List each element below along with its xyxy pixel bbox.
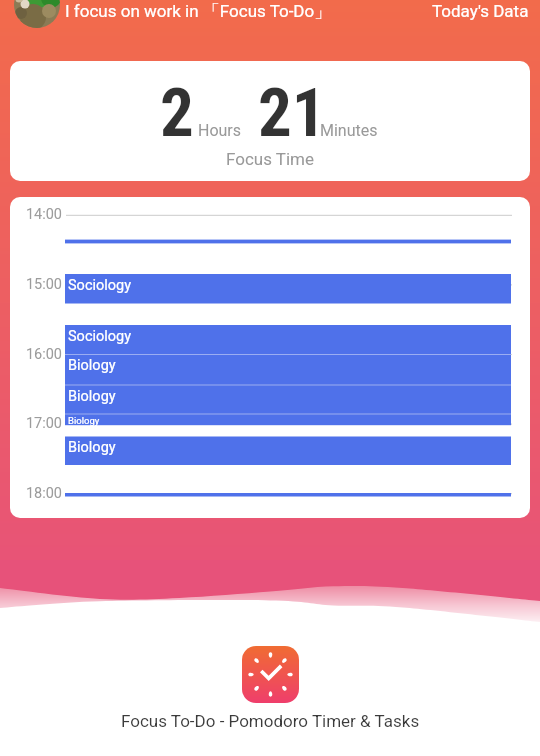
staticText: 18:00 bbox=[25, 485, 62, 502]
button[interactable]: 2 bbox=[10, 61, 530, 181]
staticText: Today's Data bbox=[432, 1, 529, 21]
staticText: Focus To-Do - Pomodoro Timer & Tasks bbox=[121, 711, 420, 731]
staticText: Sociology bbox=[68, 277, 132, 294]
button[interactable]: Profile bbox=[14, 0, 60, 28]
staticText: 2 bbox=[160, 74, 194, 153]
staticText: 21 bbox=[258, 74, 326, 153]
staticText: Sociology bbox=[68, 328, 132, 345]
staticText: I focus on work in 「Focus To-Do」 bbox=[65, 1, 332, 22]
staticText: 14:00 bbox=[25, 206, 62, 223]
staticText: Biology bbox=[68, 439, 116, 456]
staticText: Minutes bbox=[320, 121, 378, 140]
staticText: 15:00 bbox=[25, 276, 62, 293]
staticText: Biology bbox=[68, 388, 116, 405]
staticText: 17:00 bbox=[25, 415, 62, 432]
staticText: Focus Time bbox=[226, 149, 315, 169]
button[interactable]: 14:00 bbox=[10, 197, 530, 518]
staticText: Biology bbox=[68, 357, 116, 374]
staticText: 16:00 bbox=[25, 346, 62, 363]
staticText: Hours bbox=[198, 121, 242, 140]
button[interactable]: Focus To-Do app icon bbox=[242, 646, 299, 703]
staticText: Biology bbox=[68, 415, 100, 426]
